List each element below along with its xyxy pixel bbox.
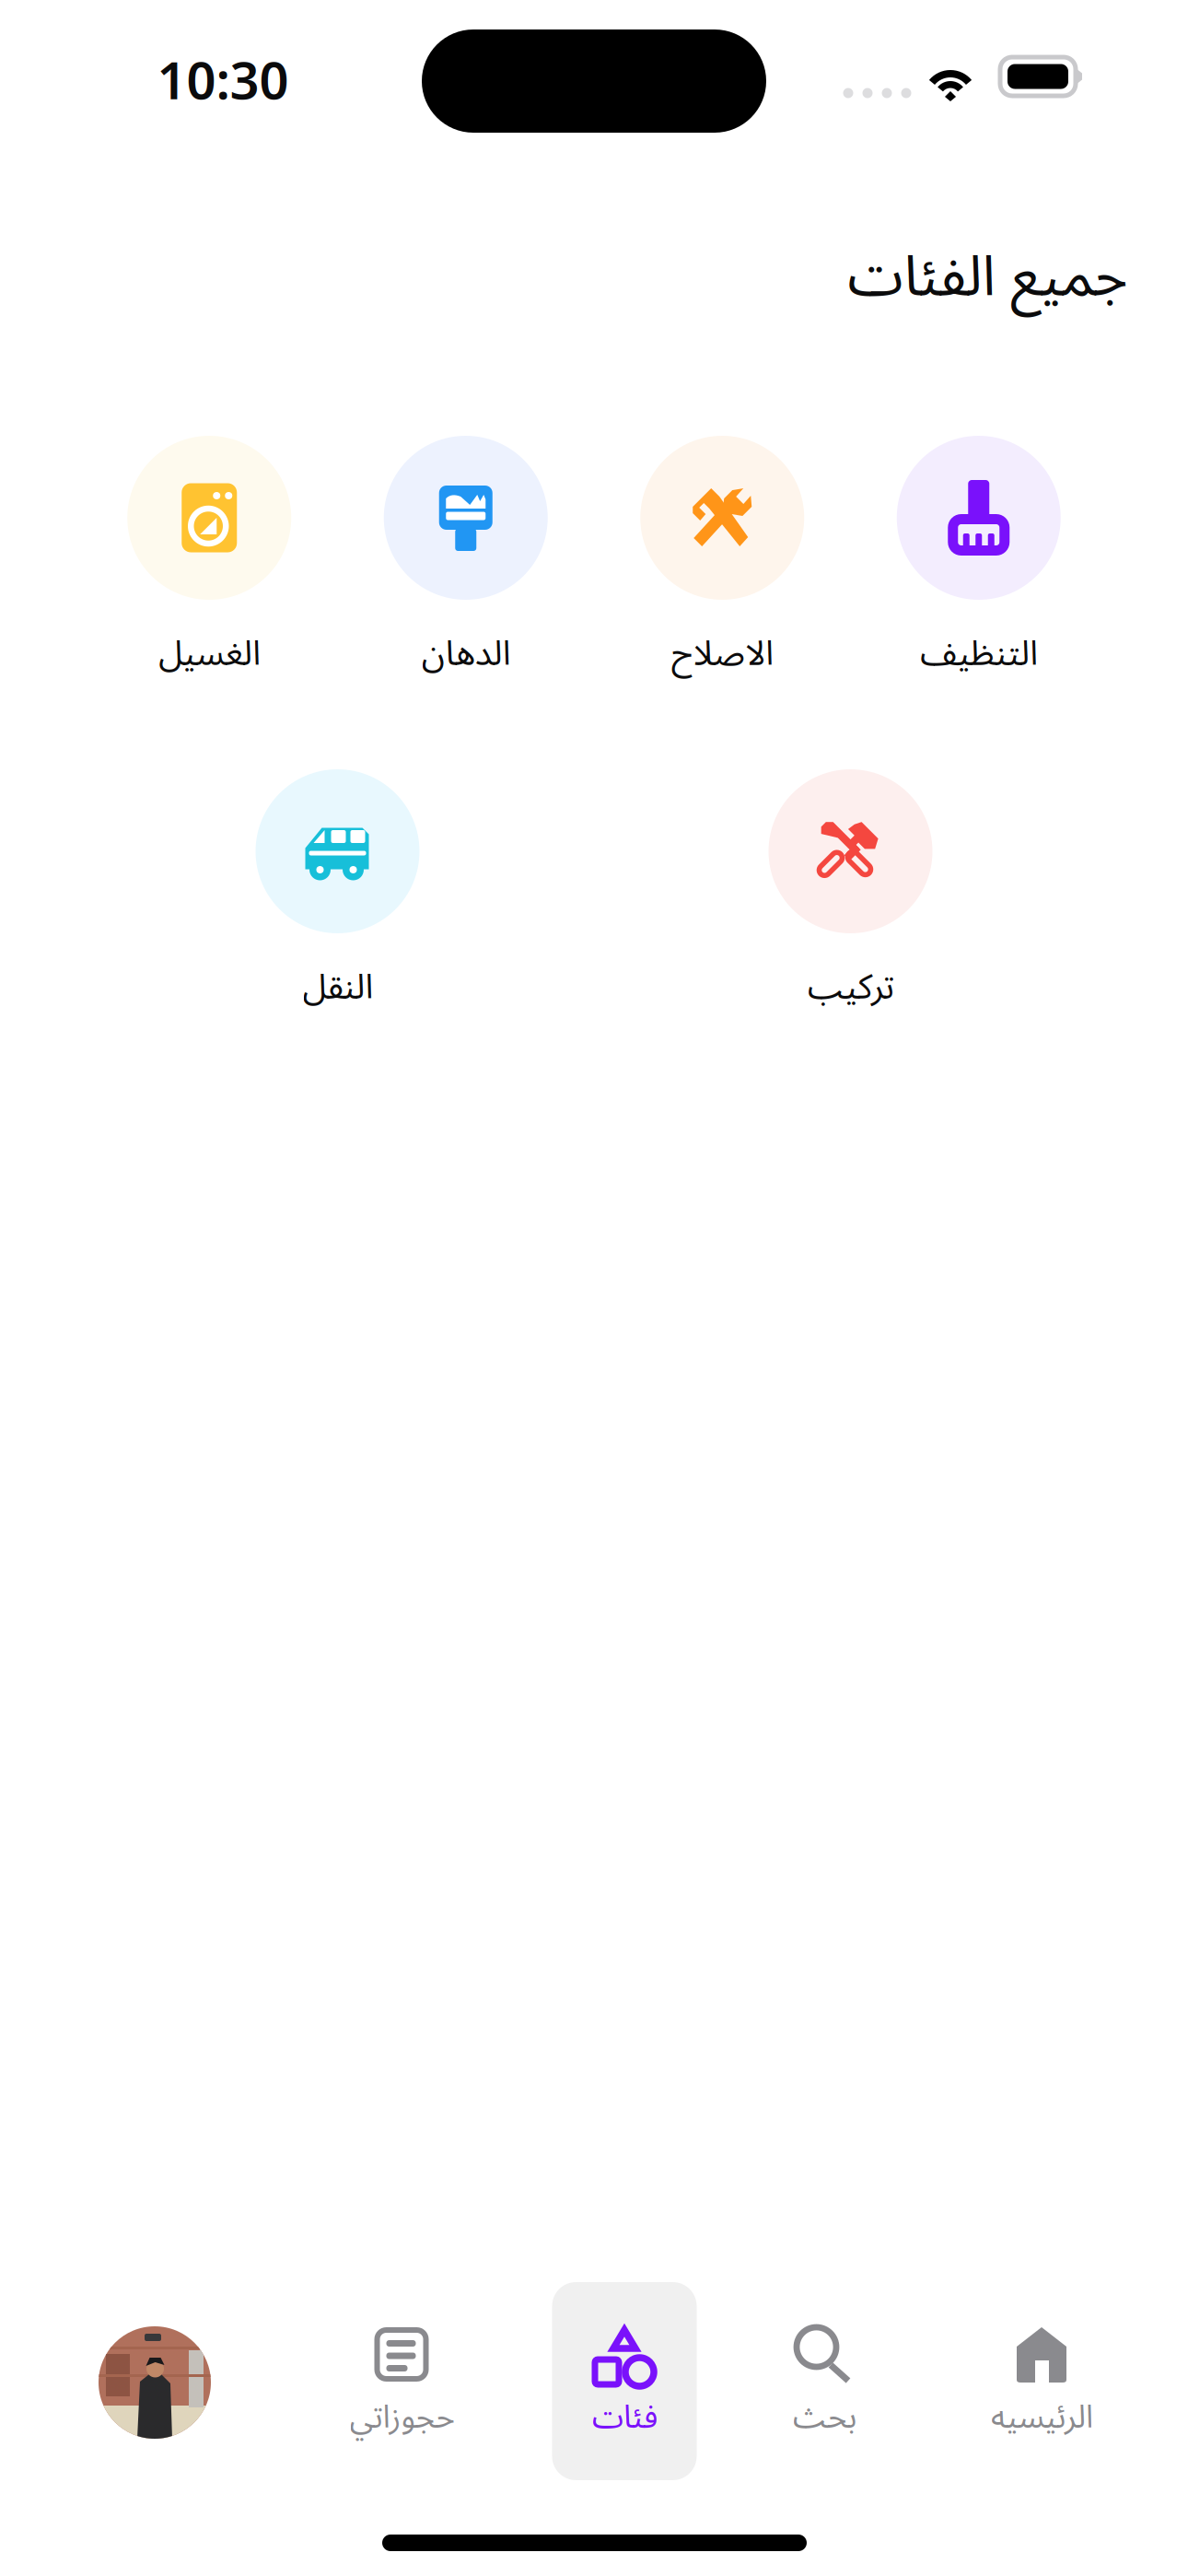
- staticText: النقل: [302, 951, 373, 1024]
- staticText: الدهان: [421, 618, 510, 690]
- staticText: جميع الفئات: [847, 218, 1127, 337]
- button[interactable]: الاصلاح: [594, 436, 850, 673]
- staticText: 10:30: [157, 45, 289, 114]
- staticText: التنظيف: [920, 618, 1038, 690]
- button[interactable]: تركيب: [594, 769, 1107, 1007]
- staticText: تركيب: [807, 951, 894, 1024]
- button[interactable]: بحث: [752, 2282, 897, 2480]
- button[interactable]: الغسيل: [81, 436, 338, 673]
- staticText: بحث: [792, 2384, 856, 2451]
- button[interactable]: الملف الشخصي: [99, 2326, 211, 2439]
- button[interactable]: الرئيسيه: [969, 2282, 1114, 2480]
- button[interactable]: الدهان: [338, 436, 594, 673]
- button[interactable]: النقل: [81, 769, 594, 1007]
- button[interactable]: حجوزاتي: [329, 2282, 474, 2480]
- staticText: حجوزاتي: [349, 2384, 454, 2451]
- staticText: الرئيسيه: [990, 2384, 1093, 2451]
- staticText: الاصلاح: [671, 618, 773, 690]
- button[interactable]: التنظيف: [850, 436, 1107, 673]
- staticText: الغسيل: [158, 618, 260, 690]
- button[interactable]: فئات: [552, 2282, 697, 2480]
- staticText: فئات: [592, 2384, 657, 2451]
